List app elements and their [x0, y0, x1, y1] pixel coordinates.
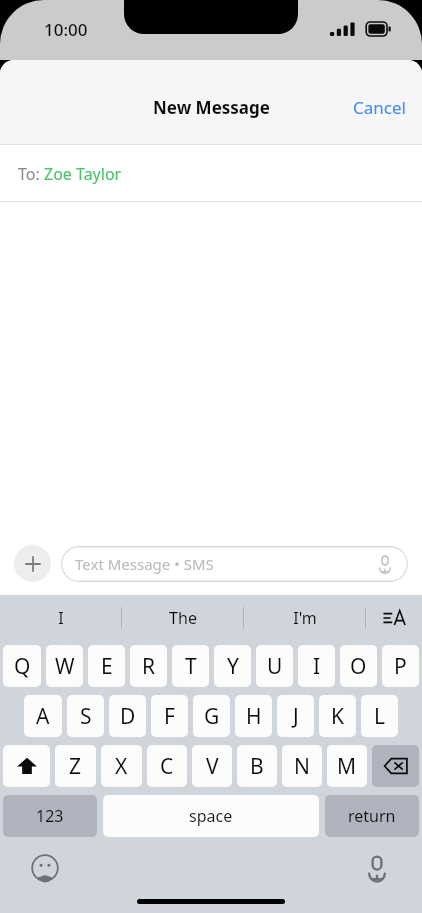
staticText: P — [394, 652, 407, 681]
staticText: Zoe Taylor — [44, 163, 122, 185]
button[interactable]: I — [0, 595, 121, 641]
button[interactable]: O — [340, 645, 377, 687]
staticText: D — [120, 702, 136, 731]
staticText: B — [250, 752, 264, 781]
button[interactable]: Cancel — [337, 88, 422, 127]
staticText: I — [58, 607, 64, 629]
button[interactable]: Z — [55, 745, 96, 787]
button[interactable]: L — [361, 695, 398, 737]
staticText: W — [55, 652, 75, 681]
button[interactable]: Shift — [3, 745, 50, 787]
button[interactable]: Delete — [372, 745, 419, 787]
staticText: U — [267, 652, 283, 681]
button[interactable]: The — [122, 595, 243, 641]
staticText: M — [337, 752, 357, 781]
staticText: Q — [14, 652, 31, 681]
button[interactable]: D — [109, 695, 146, 737]
button[interactable]: C — [147, 745, 187, 787]
staticText: A — [36, 702, 50, 731]
staticText: N — [294, 752, 310, 781]
staticText: C — [160, 752, 174, 781]
button[interactable]: F — [151, 695, 188, 737]
staticText: 10:00 — [44, 18, 88, 41]
button[interactable]: I — [298, 645, 335, 687]
button[interactable]: Emoji — [28, 851, 62, 885]
button[interactable]: I'm — [244, 595, 365, 641]
staticText: To: — [18, 163, 44, 185]
button[interactable]: T — [172, 645, 209, 687]
button[interactable]: V — [192, 745, 232, 787]
button[interactable]: S — [67, 695, 104, 737]
button[interactable]: P — [382, 645, 419, 687]
button[interactable]: To: — [0, 145, 422, 202]
staticText: Y — [227, 652, 239, 681]
button[interactable]: space — [103, 795, 319, 837]
staticText: T — [185, 652, 197, 681]
staticText: 123 — [36, 805, 64, 827]
staticText: I'm — [293, 607, 317, 629]
staticText: New Message — [153, 96, 270, 119]
button[interactable]: B — [237, 745, 277, 787]
button[interactable]: 123 — [3, 795, 97, 837]
button[interactable]: return — [325, 795, 419, 837]
button[interactable]: Text formatting — [366, 595, 422, 641]
button[interactable]: Y — [214, 645, 251, 687]
staticText: H — [246, 702, 262, 731]
staticText: return — [348, 805, 396, 827]
button[interactable]: N — [282, 745, 322, 787]
button[interactable]: K — [319, 695, 356, 737]
staticText: E — [101, 652, 113, 681]
staticText: I — [313, 652, 321, 681]
button[interactable]: Add attachment — [14, 545, 51, 582]
staticText: R — [142, 652, 156, 681]
button[interactable]: M — [327, 745, 367, 787]
staticText: V — [206, 752, 219, 781]
button[interactable]: H — [235, 695, 272, 737]
staticText: X — [115, 752, 128, 781]
staticText: L — [374, 702, 386, 731]
staticText: space — [189, 805, 233, 827]
button[interactable]: A — [24, 695, 62, 737]
button[interactable]: Text Message • SMS — [61, 546, 408, 582]
button[interactable]: Q — [3, 645, 41, 687]
button[interactable]: Dictate — [374, 553, 396, 575]
staticText: The — [169, 607, 197, 629]
button[interactable]: J — [277, 695, 314, 737]
button[interactable]: W — [46, 645, 83, 687]
staticText: F — [164, 702, 175, 731]
staticText: G — [204, 702, 220, 731]
staticText: O — [350, 652, 367, 681]
staticText: S — [80, 702, 92, 731]
button[interactable]: R — [130, 645, 167, 687]
staticText: K — [331, 702, 344, 731]
staticText: Text Message • SMS — [75, 554, 214, 574]
button[interactable]: X — [101, 745, 142, 787]
button[interactable]: U — [256, 645, 293, 687]
button[interactable]: Dictation — [360, 851, 394, 885]
button[interactable]: G — [193, 695, 230, 737]
staticText: Z — [69, 752, 82, 781]
staticText: Cancel — [353, 96, 406, 119]
staticText: J — [293, 702, 299, 731]
button[interactable]: E — [88, 645, 125, 687]
